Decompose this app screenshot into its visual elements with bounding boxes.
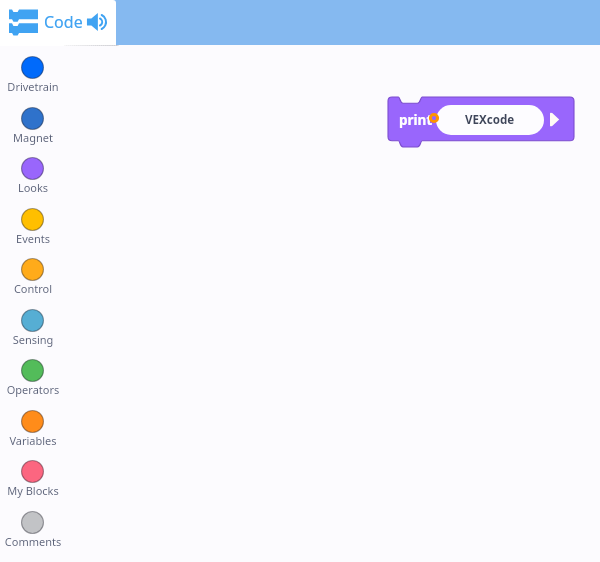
button[interactable]: Variables: [0, 406, 66, 454]
button[interactable]: My Blocks: [0, 456, 66, 504]
staticText: My Blocks: [0, 483, 66, 498]
staticText: Control: [0, 281, 66, 296]
staticText: print: [399, 111, 433, 129]
staticText: Operators: [0, 382, 66, 397]
button[interactable]: print: [388, 97, 574, 147]
button[interactable]: VEXcode: [436, 105, 544, 135]
staticText: VEXcode: [465, 112, 515, 128]
button[interactable]: Code blocks: [0, 0, 116, 46]
button[interactable]: Operators: [0, 355, 66, 403]
staticText: Looks: [0, 180, 66, 195]
staticText: Events: [0, 231, 66, 246]
staticText: Code: [44, 11, 83, 33]
staticText: Sensing: [0, 332, 66, 347]
button[interactable]: Drivetrain: [0, 52, 66, 100]
staticText: Comments: [0, 534, 66, 549]
button[interactable]: Control: [0, 254, 66, 302]
button[interactable]: Looks: [0, 153, 66, 201]
staticText: Variables: [0, 433, 66, 448]
button[interactable]: Comments: [0, 507, 66, 555]
staticText: Drivetrain: [0, 79, 66, 94]
other: Read aloud: [86, 13, 107, 31]
staticText: Magnet: [0, 130, 66, 145]
button[interactable]: Events: [0, 204, 66, 252]
button[interactable]: Run block: [545, 107, 565, 131]
button[interactable]: Sensing: [0, 305, 66, 353]
button[interactable]: Magnet: [0, 103, 66, 151]
other: Code blocks: [9, 9, 38, 36]
